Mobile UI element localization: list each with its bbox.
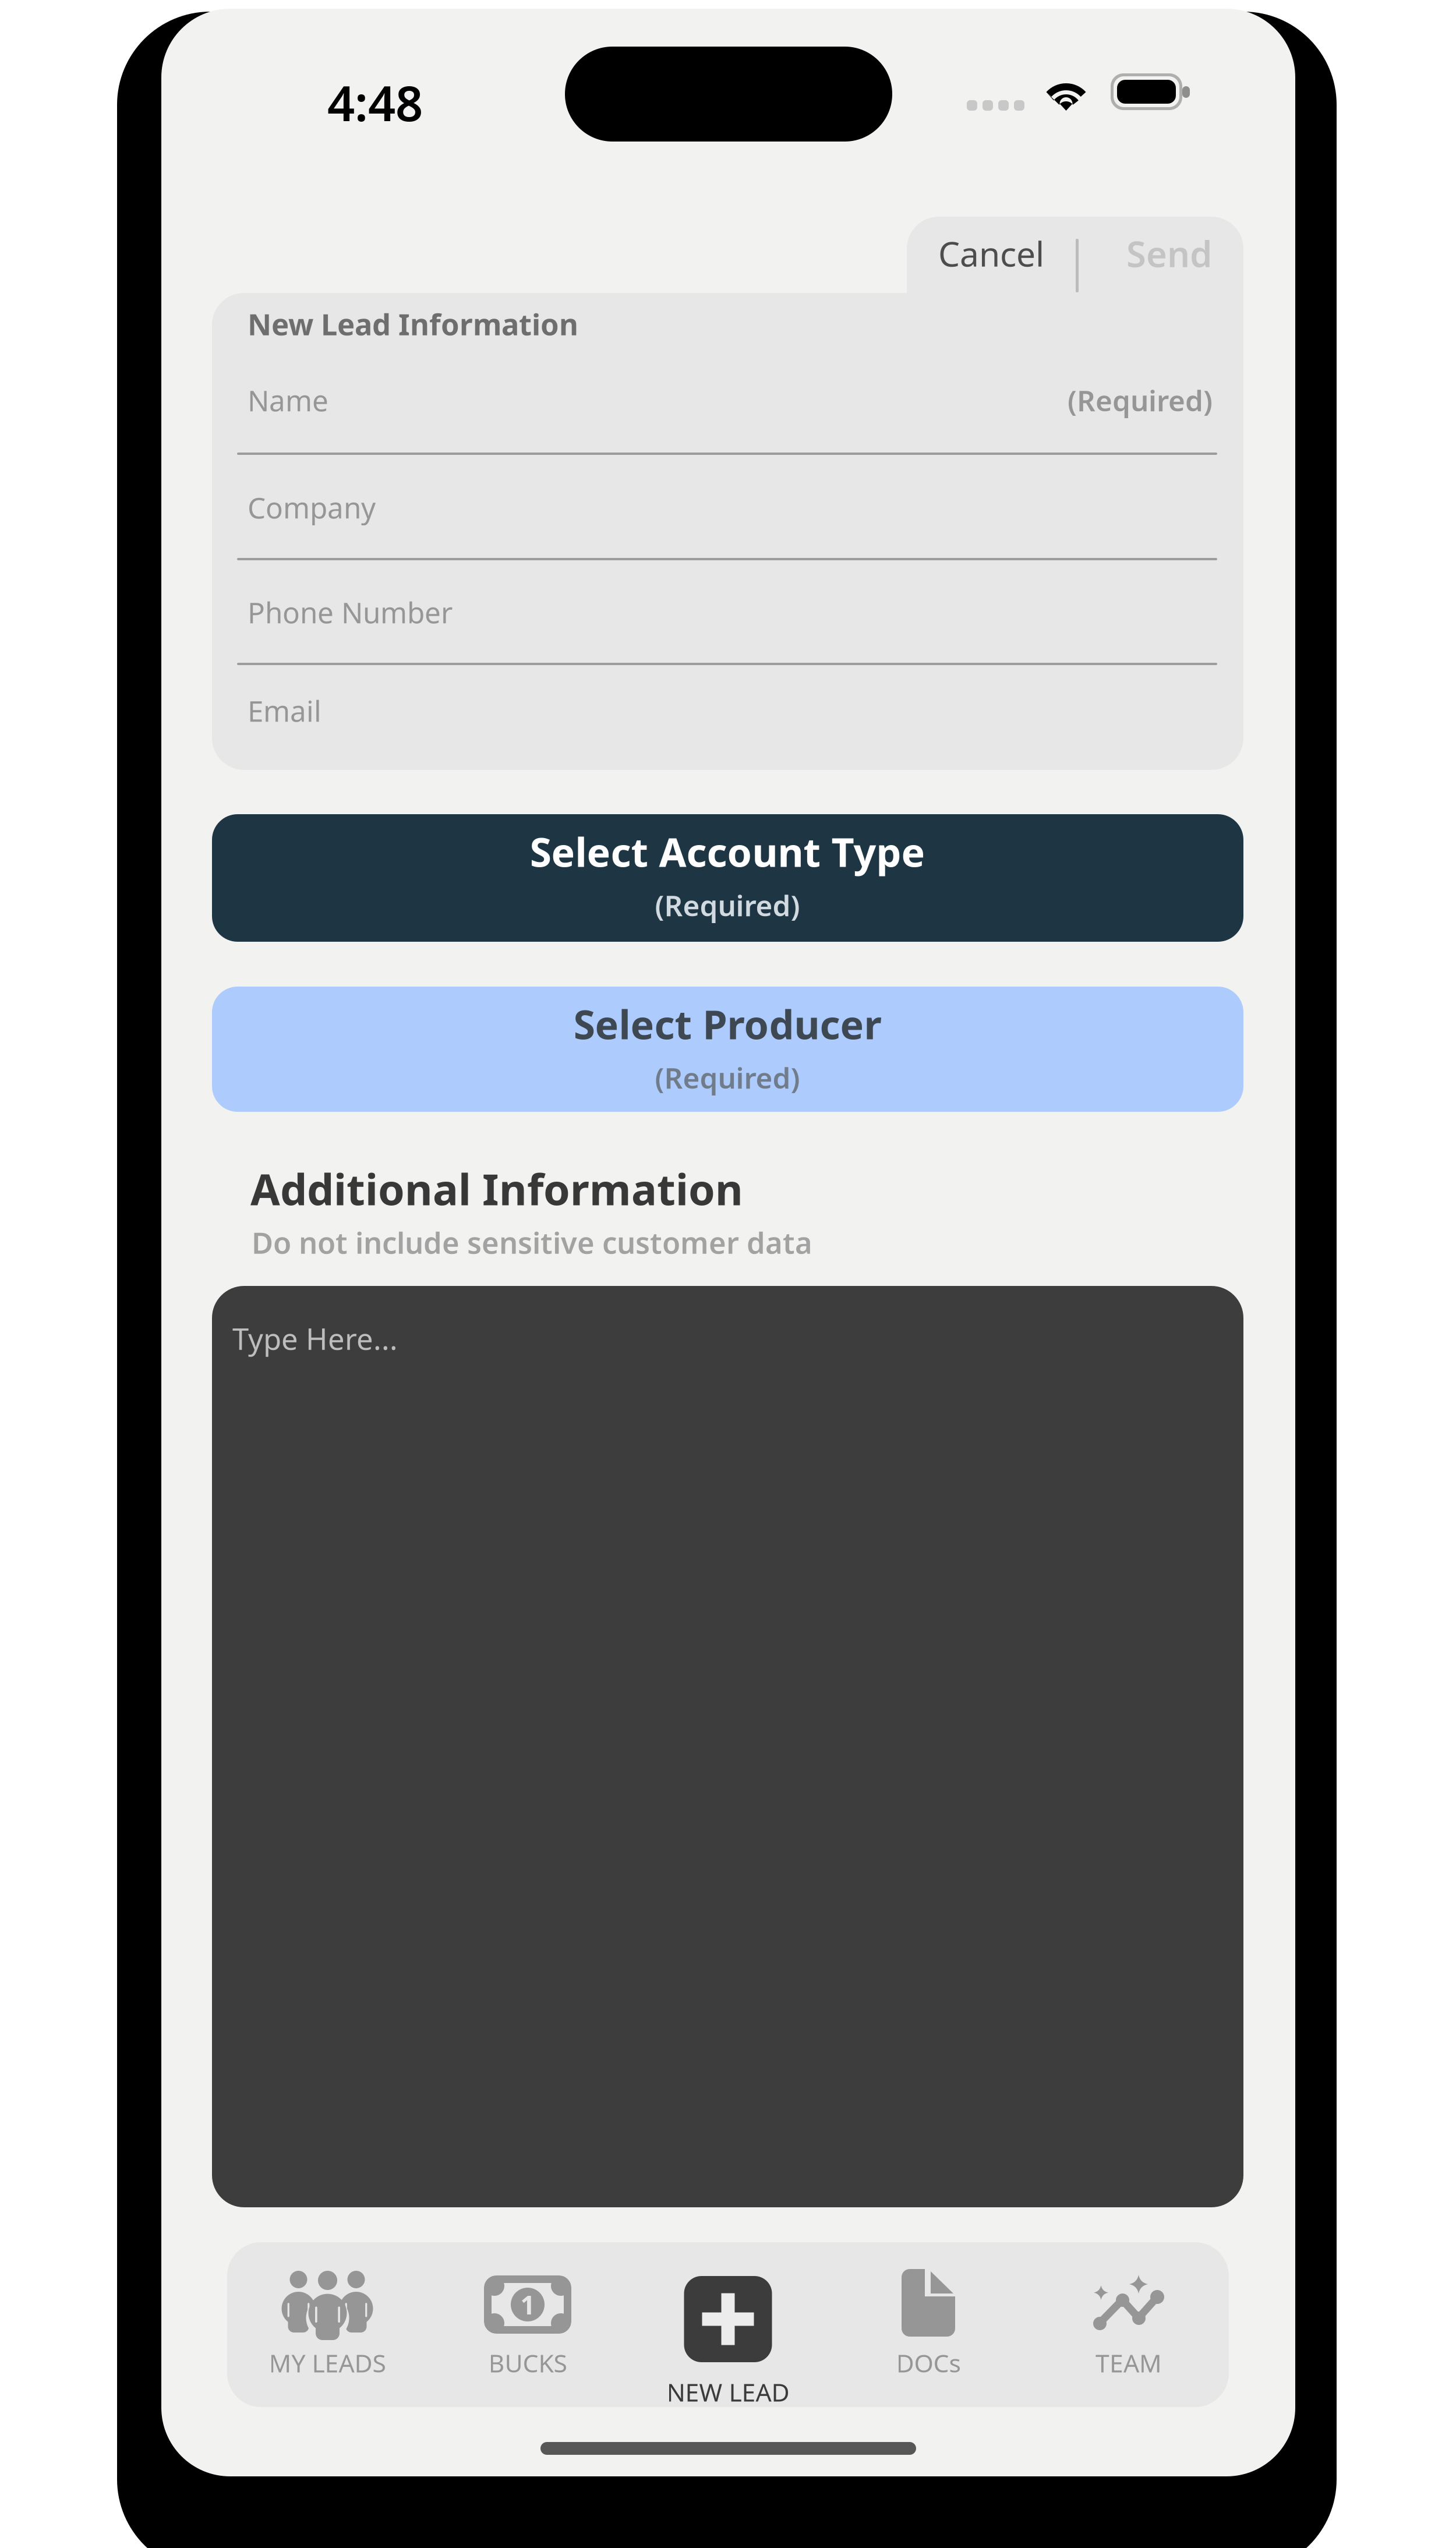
staticText: 4:48 bbox=[327, 71, 423, 134]
button[interactable]: Select Producer bbox=[212, 987, 1243, 1112]
staticText: MY LEADS bbox=[269, 2346, 386, 2379]
staticText: Type Here... bbox=[232, 1319, 398, 1358]
staticText: Phone Number bbox=[248, 593, 453, 631]
button[interactable]: TEAM bbox=[1029, 2242, 1229, 2407]
staticText: NEW LEAD bbox=[667, 2375, 789, 2408]
staticText: (Required) bbox=[1068, 381, 1213, 419]
staticText: Send bbox=[1126, 230, 1212, 277]
button[interactable]: DOCs bbox=[828, 2242, 1029, 2407]
button[interactable]: Send bbox=[1086, 210, 1252, 297]
staticText: Do not include sensitive customer data bbox=[252, 1223, 812, 1262]
staticText: Company bbox=[248, 488, 376, 526]
staticText: Name bbox=[248, 381, 328, 419]
staticText: Additional Information bbox=[250, 1160, 743, 1217]
staticText: DOCs bbox=[896, 2346, 961, 2379]
staticText: (Required) bbox=[655, 886, 800, 924]
staticText: 1 bbox=[520, 2288, 535, 2322]
staticText: Select Account Type bbox=[530, 825, 925, 878]
button[interactable]: Cancel bbox=[914, 210, 1069, 297]
staticText: TEAM bbox=[1095, 2346, 1162, 2379]
button[interactable]: Select Account Type bbox=[212, 814, 1243, 942]
staticText: BUCKS bbox=[488, 2346, 567, 2379]
button[interactable]: 1 bbox=[427, 2242, 628, 2407]
button[interactable]: NEW LEAD bbox=[628, 2242, 828, 2407]
staticText: New Lead Information bbox=[248, 304, 578, 343]
staticText: Select Producer bbox=[573, 998, 881, 1050]
button[interactable]: MY LEADS bbox=[227, 2242, 427, 2407]
staticText: Email bbox=[248, 691, 321, 730]
staticText: Cancel bbox=[938, 231, 1044, 276]
staticText: (Required) bbox=[655, 1058, 800, 1096]
